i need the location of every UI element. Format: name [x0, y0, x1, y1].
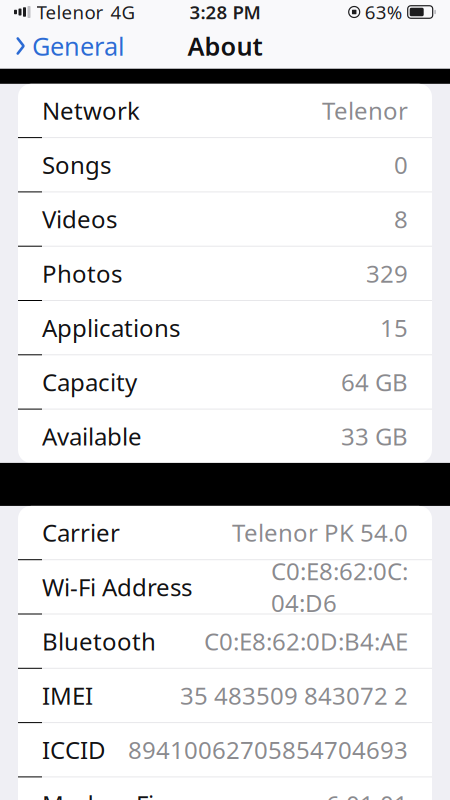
button[interactable]: General	[0, 21, 135, 71]
staticText: 64 GB	[341, 366, 408, 398]
staticText: Network	[42, 94, 140, 126]
staticText: C0:E8:62:0D:B4:AE	[204, 625, 408, 657]
staticText: About	[187, 29, 262, 63]
button[interactable]: ICCID	[18, 723, 432, 777]
staticText: IMEI	[42, 679, 93, 711]
staticText: 329	[366, 257, 408, 289]
staticText: Available	[42, 420, 142, 452]
staticText: Capacity	[42, 366, 137, 398]
staticText: Applications	[42, 312, 180, 344]
staticText: Photos	[42, 257, 122, 289]
staticText: 3:28 PM	[189, 0, 260, 24]
staticText: 35 483509 843072 2	[180, 679, 408, 711]
staticText: 33 GB	[341, 420, 408, 452]
staticText: Telenor PK 54.0	[232, 517, 408, 548]
staticText: Wi-Fi Address	[42, 571, 192, 603]
button[interactable]: Network	[18, 84, 432, 138]
button[interactable]: Available	[18, 410, 432, 463]
button[interactable]: Bluetooth	[18, 614, 432, 669]
staticText: 4G	[110, 0, 135, 24]
staticText: 6.01.01	[326, 788, 408, 800]
staticText: Modem Firmware	[42, 788, 241, 800]
staticText: General	[32, 29, 125, 63]
staticText: Telenor	[322, 94, 408, 126]
button[interactable]: Modem Firmware	[18, 777, 432, 800]
button[interactable]: Wi-Fi Address	[18, 560, 432, 614]
button[interactable]: Carrier	[18, 506, 432, 560]
staticText: C0:E8:62:0C:04:D6	[271, 555, 408, 619]
button[interactable]: Capacity	[18, 355, 432, 410]
staticText: Songs	[42, 149, 111, 181]
staticText: 15	[380, 312, 408, 344]
staticText: Videos	[42, 203, 117, 235]
staticText: 0	[394, 149, 408, 181]
button[interactable]: IMEI	[18, 669, 432, 723]
staticText: 8	[394, 203, 408, 235]
button[interactable]: Photos	[18, 247, 432, 301]
button[interactable]: Applications	[18, 301, 432, 355]
button[interactable]: Videos	[18, 192, 432, 247]
staticText: 63%	[365, 0, 403, 24]
staticText: Carrier	[42, 517, 120, 548]
staticText: Bluetooth	[42, 625, 156, 657]
staticText: Telenor	[36, 0, 103, 24]
staticText: 89410062705854704693	[128, 734, 408, 766]
staticText: ICCID	[42, 734, 106, 766]
button[interactable]: Songs	[18, 138, 432, 192]
